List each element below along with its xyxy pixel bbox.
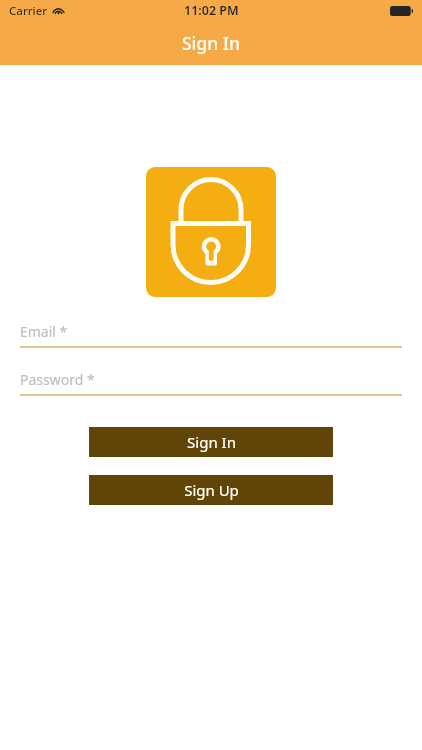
button[interactable]: Sign Up bbox=[89, 475, 333, 505]
staticText: Sign In bbox=[187, 432, 236, 452]
staticText: Carrier bbox=[9, 3, 48, 19]
staticText: Sign In bbox=[182, 31, 240, 55]
other: Secure sign in bbox=[146, 167, 276, 297]
button[interactable]: Sign In bbox=[89, 427, 333, 457]
staticText: Password * bbox=[20, 370, 95, 389]
staticText: Sign Up bbox=[184, 480, 239, 500]
staticText: 11:02 PM bbox=[184, 2, 239, 19]
button[interactable]: Email * bbox=[20, 322, 402, 348]
staticText: Email * bbox=[20, 322, 68, 341]
button[interactable]: Password * bbox=[20, 370, 402, 396]
